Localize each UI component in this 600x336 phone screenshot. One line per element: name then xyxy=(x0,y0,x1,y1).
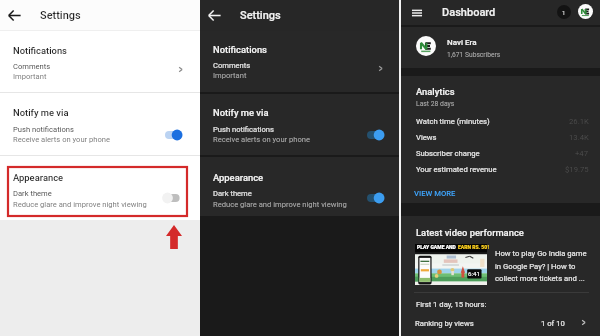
button[interactable]: Toggle on xyxy=(364,192,384,204)
button[interactable] xyxy=(0,186,200,214)
staticText: Push notifications xyxy=(213,125,274,134)
staticText: Settings xyxy=(240,9,281,22)
staticText: $19.75 xyxy=(565,165,589,174)
button[interactable]: Back xyxy=(206,7,223,24)
staticText: 1,671 Subscribers xyxy=(447,51,501,59)
staticText: Comments xyxy=(213,61,251,70)
staticText: 26.1K xyxy=(569,117,589,126)
button[interactable] xyxy=(200,120,399,148)
staticText: Your estimated revenue xyxy=(416,165,497,174)
staticText: Push notifications xyxy=(13,125,74,134)
staticText: Analytics xyxy=(416,86,455,97)
button[interactable] xyxy=(401,160,600,175)
staticText: Comments xyxy=(13,62,51,71)
button[interactable] xyxy=(401,315,600,331)
staticText: Last 28 days xyxy=(416,100,455,108)
staticText: Notify me via xyxy=(213,107,269,118)
button[interactable]: Menu xyxy=(411,7,423,19)
button[interactable] xyxy=(0,58,200,88)
staticText: First 1 day, 15 hours: xyxy=(416,300,487,309)
staticText: Receive alerts on your phone xyxy=(213,135,311,144)
button[interactable] xyxy=(401,128,600,143)
button[interactable]: Back xyxy=(6,7,23,24)
staticText: VIEW MORE xyxy=(414,189,456,198)
staticText: Notifications xyxy=(13,45,67,56)
staticText: Dashboard xyxy=(442,6,496,19)
staticText: +47 xyxy=(575,149,589,158)
button[interactable]: Toggle on xyxy=(162,129,182,141)
staticText: 1 of 10 xyxy=(541,319,565,328)
staticText: 13.4K xyxy=(569,133,589,142)
button[interactable] xyxy=(401,112,600,127)
staticText: Ranking by views xyxy=(415,319,474,328)
staticText: Settings xyxy=(40,9,81,22)
staticText: Appearance xyxy=(13,172,64,183)
staticText: Important xyxy=(213,71,247,80)
staticText: PLAY GAME AND xyxy=(417,244,456,250)
button[interactable] xyxy=(200,58,399,86)
staticText: Watch time (minutes) xyxy=(416,117,490,126)
button[interactable]: Toggle off xyxy=(163,192,183,204)
button[interactable] xyxy=(200,186,399,214)
staticText: Notify me via xyxy=(13,107,69,118)
staticText: Navi Era xyxy=(447,38,477,47)
staticText: Dark theme xyxy=(13,189,52,198)
button[interactable] xyxy=(401,241,600,289)
button[interactable]: Account xyxy=(578,4,593,19)
staticText: How to play Go India game in Google Pay?… xyxy=(495,249,592,283)
staticText: Reduce glare and improve night viewing xyxy=(213,200,347,209)
staticText: 6:41 xyxy=(468,270,480,277)
staticText: Important xyxy=(13,72,47,81)
staticText: Notifications xyxy=(213,44,267,55)
staticText: Dark theme xyxy=(213,189,252,198)
button[interactable] xyxy=(0,120,200,148)
staticText: EARN RS. 501 xyxy=(458,244,489,250)
staticText: Receive alerts on your phone xyxy=(13,135,111,144)
button[interactable] xyxy=(401,27,600,68)
staticText: 1 xyxy=(562,9,566,16)
staticText: Subscriber change xyxy=(416,149,480,158)
button[interactable]: Toggle on xyxy=(364,129,384,141)
staticText: Appearance xyxy=(213,172,264,183)
staticText: Latest video performance xyxy=(416,227,524,238)
button[interactable]: VIEW MORE xyxy=(411,186,469,201)
button[interactable] xyxy=(401,144,600,159)
staticText: Reduce glare and improve night viewing xyxy=(13,200,147,209)
button[interactable]: Notifications xyxy=(557,5,571,19)
staticText: Views xyxy=(416,133,437,142)
